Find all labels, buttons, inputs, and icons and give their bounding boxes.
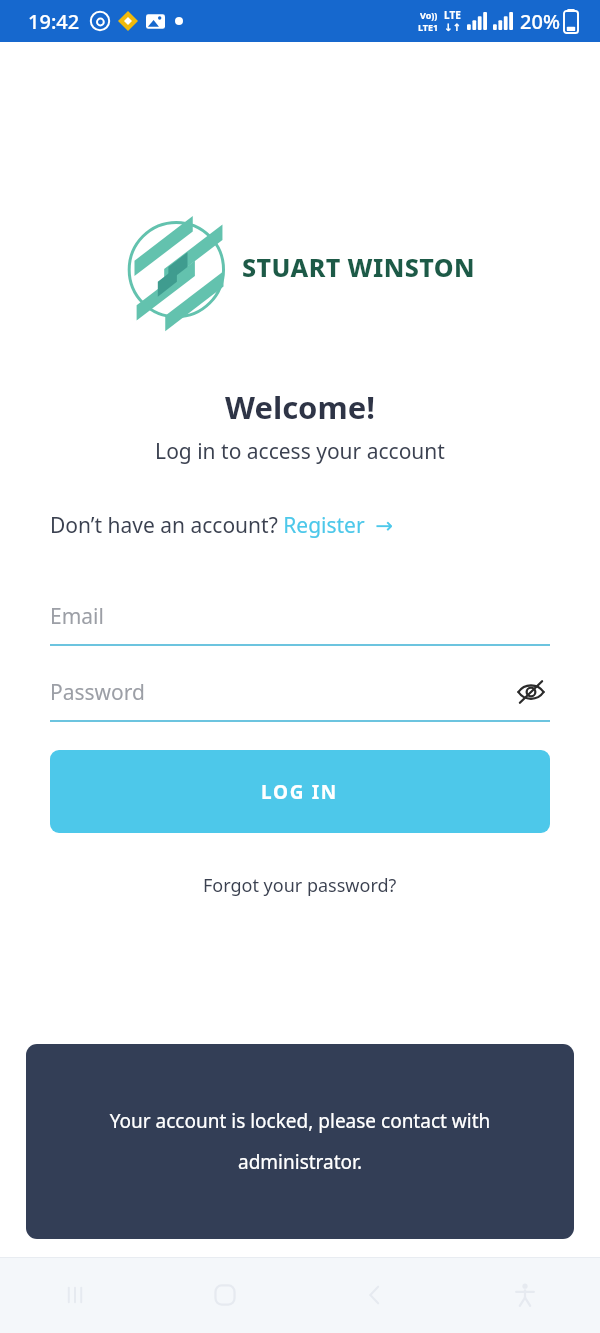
button[interactable]: Show password [512,673,550,711]
button[interactable]: Forgot your password? [203,873,397,898]
staticText: Don’t have an account? Register → [50,511,394,540]
staticText: LTE1 [418,21,439,33]
button[interactable]: Password [50,666,550,722]
staticText: Welcome! [0,386,600,428]
staticText: Password [50,678,512,707]
staticText: LOG IN [261,779,339,805]
staticText: 20% [520,8,560,35]
button[interactable]: Email [50,590,550,646]
staticText: ↓↑ [444,22,461,34]
staticText: STUART WINSTON [242,250,475,284]
button[interactable]: Don’t have an account? Register → [50,511,394,540]
staticText: Your account is locked, please contact w… [68,1108,532,1175]
staticText: Vo)) [420,9,438,21]
staticText: LTE [444,8,461,22]
staticText: 19:42 [28,8,80,35]
button[interactable]: LOG IN [50,750,550,833]
staticText: Email [50,602,550,631]
staticText: Log in to access your account [0,437,600,466]
